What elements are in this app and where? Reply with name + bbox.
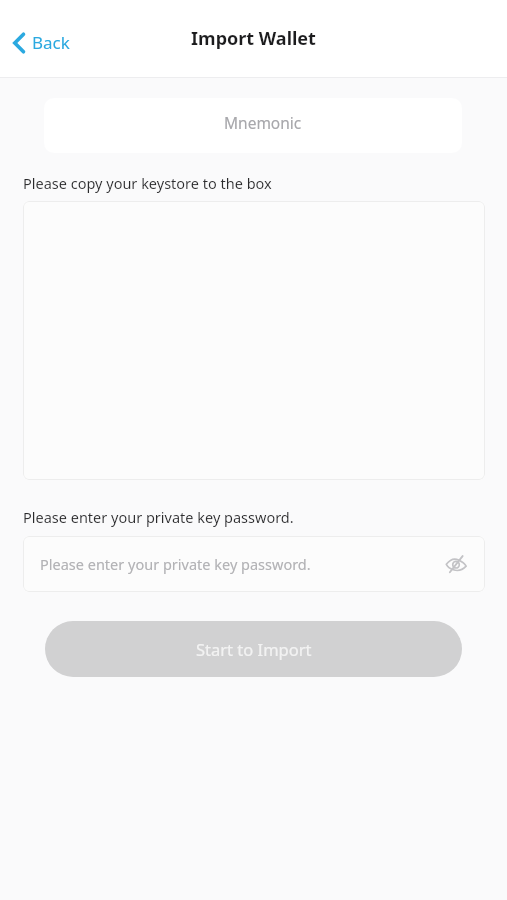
button[interactable]: Mnemonic (64, 98, 462, 153)
staticText: Please copy your keystore to the box (23, 173, 272, 193)
button[interactable]: Please enter your private key password. (23, 536, 485, 592)
staticText: Please enter your private key password. (40, 554, 311, 574)
staticText: Please enter your private key password. (23, 507, 294, 527)
staticText: Mnemonic (224, 112, 302, 133)
button[interactable]: Start to Import (45, 621, 462, 677)
button[interactable]: Back (12, 31, 70, 54)
staticText: Import Wallet (0, 26, 507, 51)
button[interactable]: Show password (440, 548, 472, 580)
staticText: Start to Import (196, 638, 312, 660)
staticText: Back (32, 31, 70, 54)
